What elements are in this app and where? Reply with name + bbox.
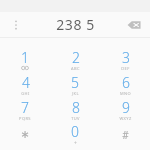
- button[interactable]: More options: [4, 13, 28, 37]
- staticText: #: [122, 128, 129, 142]
- button[interactable]: 9: [100, 97, 150, 122]
- button[interactable]: 8: [50, 97, 100, 122]
- button[interactable]: 6: [100, 72, 150, 97]
- staticText: WXYZ: [119, 116, 132, 121]
- staticText: PQRS: [19, 116, 31, 121]
- staticText: JKL: [72, 91, 79, 96]
- button[interactable]: 3: [100, 47, 150, 72]
- button[interactable]: 5: [50, 72, 100, 97]
- staticText: TUV: [71, 116, 80, 121]
- staticText: 238 5: [56, 15, 95, 34]
- button[interactable]: 1: [0, 47, 50, 72]
- button[interactable]: 7: [0, 97, 50, 122]
- staticText: 2: [72, 48, 80, 67]
- staticText: 8: [72, 98, 80, 117]
- staticText: 7: [21, 98, 29, 117]
- staticText: DEF: [121, 66, 130, 71]
- staticText: ∗: [20, 128, 30, 141]
- staticText: 3: [122, 48, 130, 67]
- staticText: 6: [122, 73, 130, 92]
- staticText: MNO: [120, 91, 131, 96]
- button[interactable]: Backspace: [122, 13, 146, 37]
- staticText: GHI: [21, 91, 30, 96]
- button[interactable]: ∗: [0, 122, 50, 147]
- staticText: 4: [22, 73, 30, 92]
- staticText: 1: [21, 48, 29, 67]
- staticText: 9: [122, 98, 130, 117]
- staticText: 0: [71, 122, 79, 141]
- staticText: ABC: [71, 66, 80, 71]
- button[interactable]: #: [100, 122, 150, 147]
- staticText: +: [74, 140, 77, 146]
- button[interactable]: 4: [0, 72, 50, 97]
- staticText: 5: [71, 73, 79, 92]
- button[interactable]: 0: [50, 122, 100, 147]
- button[interactable]: 2: [50, 47, 100, 72]
